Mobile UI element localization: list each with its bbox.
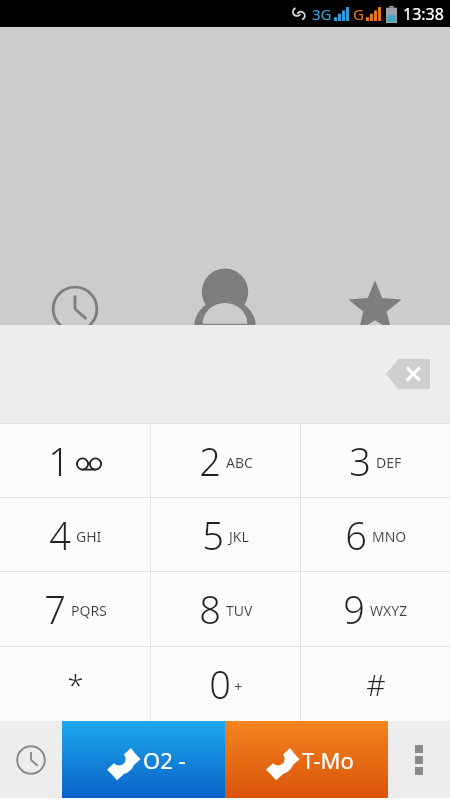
staticText: 3G (312, 4, 332, 24)
button[interactable]: * (0, 647, 150, 721)
button[interactable]: 9 (301, 572, 450, 646)
staticText: 2 (199, 435, 221, 487)
staticText: G (353, 4, 364, 24)
button[interactable]: T-Mo (225, 721, 388, 798)
button[interactable]: 3 (301, 424, 450, 497)
staticText: JKL (229, 527, 249, 546)
staticText: TUV (226, 601, 253, 620)
staticText: 0 (209, 658, 231, 710)
staticText: O2 - (143, 745, 186, 775)
staticText: 6 (345, 509, 367, 561)
button[interactable]: Favorites (300, 245, 450, 325)
staticText: DEF (376, 453, 402, 472)
button[interactable]: 5 (151, 498, 300, 571)
button[interactable]: 7 (0, 572, 150, 646)
button[interactable]: Contacts (150, 245, 300, 325)
staticText: MNO (372, 527, 407, 546)
button[interactable]: 1 (0, 424, 150, 497)
staticText: * (67, 664, 84, 705)
button[interactable]: Recents (0, 245, 150, 325)
button[interactable]: 4 (0, 498, 150, 571)
staticText: 3 (349, 435, 371, 487)
button[interactable]: # (301, 647, 450, 721)
staticText: PQRS (71, 601, 107, 620)
button[interactable]: O2 - (62, 721, 225, 798)
button[interactable]: 2 (151, 424, 300, 497)
staticText: 7 (44, 583, 66, 635)
staticText: + (234, 676, 243, 696)
staticText: T-Mo (302, 745, 354, 775)
staticText: 5 (202, 509, 224, 561)
staticText: 13:38 (403, 3, 444, 25)
staticText: 1 (48, 435, 70, 487)
button[interactable]: 8 (151, 572, 300, 646)
staticText: 9 (343, 583, 365, 635)
button[interactable]: Call log (0, 721, 62, 798)
button[interactable]: 6 (301, 498, 450, 571)
staticText: ABC (226, 453, 253, 472)
button[interactable]: Backspace (376, 349, 440, 399)
staticText: 4 (49, 509, 71, 561)
staticText: WXYZ (370, 601, 408, 620)
staticText: # (366, 664, 386, 705)
staticText: 8 (199, 583, 221, 635)
button[interactable]: More options (388, 721, 450, 798)
button[interactable]: 0 (151, 647, 300, 721)
staticText: GHI (76, 527, 102, 546)
